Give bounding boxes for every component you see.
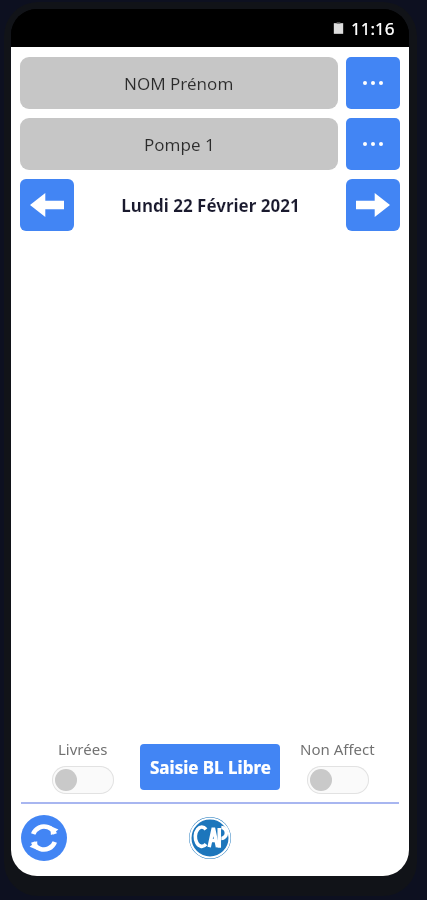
staticText: 11:16 (351, 17, 395, 40)
button[interactable]: Pompe 1 (20, 118, 338, 170)
staticText: NOM Prénom (124, 72, 234, 95)
staticText: Livrées (58, 739, 108, 759)
button[interactable]: Livrées (52, 766, 114, 794)
staticText: Pompe 1 (144, 133, 215, 156)
button[interactable]: More options (346, 57, 400, 109)
button[interactable]: Non Affect (307, 766, 369, 794)
staticText: Lundi 22 Février 2021 (121, 194, 300, 217)
button[interactable]: NOM Prénom (20, 57, 338, 109)
button[interactable]: Next day (346, 179, 400, 231)
button[interactable]: CAP logo (188, 816, 232, 860)
button[interactable]: Refresh (21, 815, 67, 861)
button[interactable]: Saisie BL Libre (140, 744, 280, 790)
staticText: Non Affect (300, 739, 375, 759)
button[interactable]: Previous day (20, 179, 74, 231)
staticText: Saisie BL Libre (150, 756, 271, 779)
button[interactable]: More options (346, 118, 400, 170)
